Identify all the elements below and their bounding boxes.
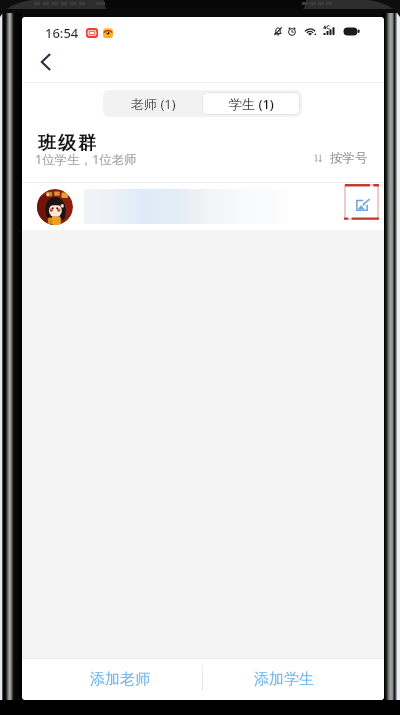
- button[interactable]: 添加老师: [67, 659, 172, 700]
- button[interactable]: 学生 (1): [202, 92, 300, 115]
- button[interactable]: 按学号: [314, 150, 368, 166]
- button[interactable]: Edit student: [344, 184, 379, 220]
- button[interactable]: Edit student: [22, 183, 384, 230]
- staticText: 添加老师: [90, 670, 150, 689]
- staticText: 学生 (1): [229, 95, 274, 113]
- staticText: 按学号: [330, 150, 368, 166]
- button[interactable]: Back: [31, 47, 61, 77]
- staticText: 老师 (1): [131, 95, 176, 113]
- staticText: 16:54: [45, 24, 79, 42]
- staticText: 添加学生: [254, 670, 314, 689]
- staticText: 班级群: [37, 132, 97, 155]
- button[interactable]: 老师 (1): [105, 92, 202, 115]
- button[interactable]: 添加学生: [231, 659, 337, 700]
- staticText: 1位学生，1位老师: [35, 151, 137, 168]
